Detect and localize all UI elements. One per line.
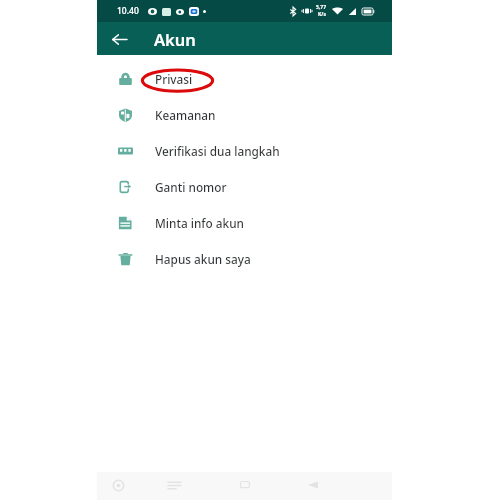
button[interactable]: Assistant [105,472,131,498]
button[interactable]: Back [300,472,326,498]
button[interactable]: Privasi [97,61,392,97]
staticText: K/s [318,11,326,18]
staticText: 5,77 [316,4,327,11]
button[interactable]: Back [105,25,133,53]
staticText: Keamanan [155,107,216,123]
staticText: Ganti nomor [155,179,227,195]
staticText: Hapus akun saya [155,251,251,267]
staticText: Verifikasi dua langkah [155,143,280,159]
button[interactable]: Minta info akun [97,205,392,241]
button[interactable]: Keamanan [97,97,392,133]
button[interactable]: Verifikasi dua langkah [97,133,392,169]
button[interactable]: Hapus akun saya [97,241,392,277]
staticText: Minta info akun [155,215,244,231]
button[interactable]: Home [232,472,258,498]
button[interactable]: Recents [161,472,187,498]
staticText: Privasi [155,71,193,87]
staticText: 10.40 [117,5,139,17]
staticText: Akun [154,28,196,50]
button[interactable]: Ganti nomor [97,169,392,205]
